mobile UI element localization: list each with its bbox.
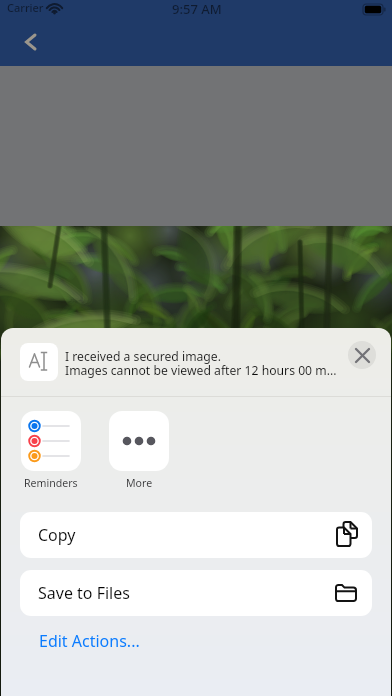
- staticText: I received a secured image. Images canno…: [65, 348, 337, 379]
- staticText: Carrier: [7, 0, 44, 15]
- staticText: More: [126, 476, 153, 490]
- staticText: Reminders: [24, 476, 78, 490]
- staticText: Save to Files: [38, 582, 130, 604]
- button[interactable]: Copy: [20, 512, 372, 558]
- button[interactable]: Close: [348, 341, 376, 369]
- staticText: Copy: [38, 524, 76, 546]
- button[interactable]: Save to Files: [20, 570, 372, 616]
- staticText: 9:57 AM: [172, 0, 222, 18]
- button[interactable]: I received a secured image. Images canno…: [1, 343, 391, 381]
- staticText: Edit Actions...: [39, 630, 140, 652]
- button[interactable]: Edit Actions...: [39, 630, 140, 652]
- button[interactable]: Back: [8, 25, 48, 65]
- button[interactable]: Reminders: [21, 411, 81, 490]
- button[interactable]: More: [109, 411, 169, 490]
